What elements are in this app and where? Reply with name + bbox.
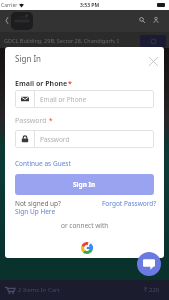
staticText: Sign In <box>15 53 42 64</box>
staticText: or connect with <box>61 221 109 230</box>
staticText: 3:53 PM <box>80 2 100 9</box>
button[interactable]: Search <box>136 14 148 26</box>
staticText: ₹ 220 <box>144 286 160 294</box>
staticText: Carrier <box>1 2 18 9</box>
staticText: * <box>47 116 53 126</box>
staticText: Password <box>15 116 47 126</box>
button[interactable]: Account <box>150 14 162 26</box>
button[interactable]: Back <box>0 14 13 27</box>
button[interactable]: Email or Phone <box>15 90 154 108</box>
staticText: 3:53 PM <box>80 2 100 9</box>
button[interactable]: Map <box>140 35 166 47</box>
button[interactable]: View cart <box>0 280 169 300</box>
staticText: Email or Phone <box>15 79 68 89</box>
staticText: Sign In <box>73 180 96 189</box>
staticText: Password <box>40 135 70 144</box>
button[interactable]: Forgot Password? <box>102 199 157 208</box>
button[interactable]: Continue as Guest <box>15 159 71 168</box>
staticText: 2 Items In Cart <box>18 286 60 294</box>
staticText: Continue as Guest <box>15 159 71 168</box>
staticText: Email or Phone <box>40 95 87 104</box>
button[interactable]: Sign In <box>15 174 154 195</box>
button[interactable]: Account <box>150 14 162 26</box>
button[interactable]: Password <box>15 130 154 148</box>
button[interactable]: Home <box>11 12 33 30</box>
button[interactable]: Chat <box>137 252 161 276</box>
staticText: Not signed up? Sign Up Here <box>15 199 69 216</box>
button[interactable]: Search <box>136 14 148 26</box>
button[interactable]: Map <box>140 35 166 47</box>
staticText: GDCL Building, 29B, Sector 28, Chandigar… <box>4 37 119 44</box>
staticText: Forgot Password? <box>102 199 157 208</box>
staticText: GDCL Building, 29B, Sector 28, Chandigar… <box>4 37 119 44</box>
staticText: * <box>68 79 72 89</box>
button[interactable]: Sign in with Google <box>78 239 95 256</box>
button[interactable]: Not signed up? Sign Up Here <box>15 199 69 216</box>
button[interactable]: Back <box>0 14 13 27</box>
button[interactable]: Close <box>145 53 162 70</box>
button[interactable]: Home <box>11 12 33 30</box>
staticText: Carrier <box>1 2 18 9</box>
